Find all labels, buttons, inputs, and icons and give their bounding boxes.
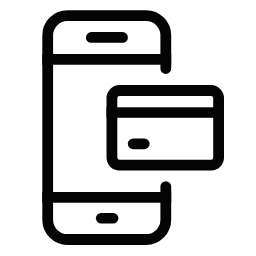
button[interactable]: Mobile payment with credit card [0, 0, 256, 256]
